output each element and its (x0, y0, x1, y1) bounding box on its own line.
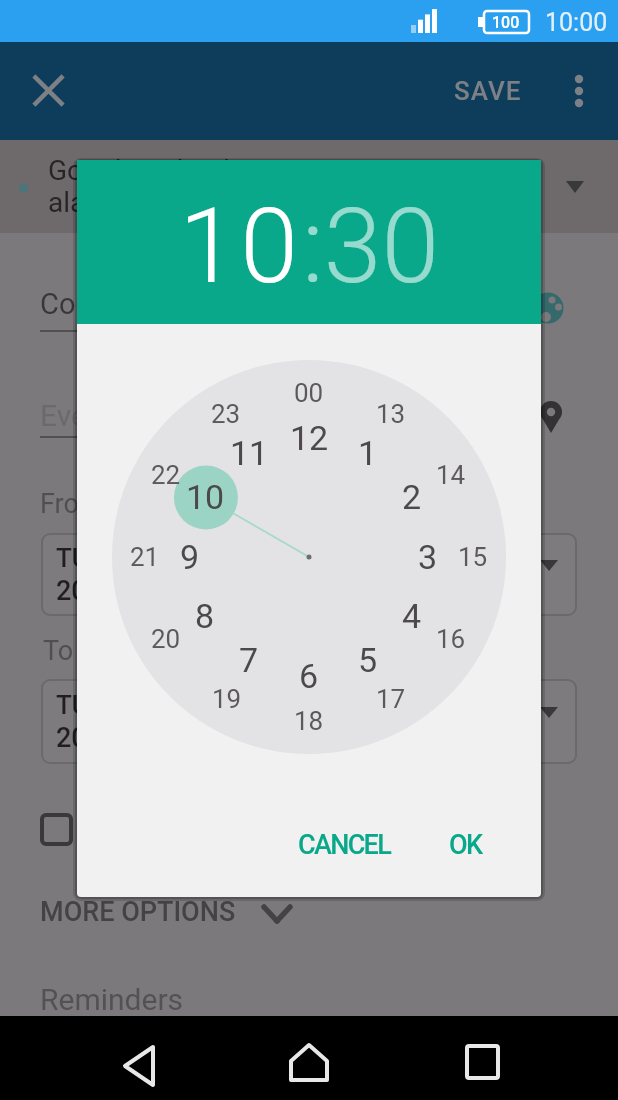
button[interactable] (279, 1036, 339, 1096)
staticText: 00 (294, 378, 324, 408)
button[interactable]: 00 (281, 371, 337, 415)
button[interactable] (557, 66, 601, 116)
button[interactable]: 5 (336, 635, 400, 685)
staticText: SAVE (454, 76, 522, 106)
button[interactable]: 12 (277, 413, 341, 463)
staticText: 23 (211, 399, 241, 429)
button[interactable]: 10 (179, 186, 302, 308)
staticText: 19 (212, 684, 242, 714)
button[interactable]: SAVE (408, 61, 568, 121)
staticText: OK (449, 829, 482, 861)
button[interactable]: 18 (281, 699, 337, 743)
button[interactable] (41, 679, 577, 764)
staticText: 2 (402, 477, 422, 517)
button[interactable]: CANCEL (269, 817, 419, 873)
staticText: From (40, 488, 103, 520)
staticText: 21 (130, 542, 160, 572)
staticText: 20 (151, 624, 181, 654)
staticText: 10:00 (545, 8, 608, 37)
staticText: 8 (195, 596, 215, 636)
button[interactable]: 15 (445, 535, 501, 579)
staticText: 12 (290, 418, 329, 458)
staticText: Reminders (40, 982, 184, 1017)
staticText: 3 (418, 537, 438, 577)
staticText: Event name (40, 398, 196, 433)
button[interactable]: OK (420, 817, 510, 873)
staticText: 17 (376, 684, 406, 714)
staticText: 15 (458, 542, 488, 572)
staticText: To (43, 635, 74, 667)
staticText: 16 (436, 624, 466, 654)
button[interactable]: 23 (198, 392, 254, 436)
button[interactable]: 9 (158, 532, 222, 582)
button[interactable] (452, 1036, 512, 1096)
button[interactable]: 4 (380, 591, 444, 641)
button[interactable]: 16 (423, 617, 479, 661)
button[interactable] (24, 66, 74, 116)
staticText: 22 (151, 460, 181, 490)
button[interactable]: 19 (199, 677, 255, 721)
button[interactable] (34, 807, 78, 851)
staticText: 11 (230, 433, 269, 473)
button[interactable]: 1 (336, 428, 400, 478)
button[interactable] (109, 1036, 169, 1096)
staticText: Connected calen (40, 287, 256, 321)
staticText: 10 (186, 477, 225, 517)
button[interactable]: 2 (380, 472, 444, 522)
staticText: 1 (358, 433, 378, 473)
staticText: CANCEL (298, 829, 391, 861)
staticText: 2015 (56, 722, 118, 754)
button[interactable]: 6 (277, 651, 341, 701)
staticText: Google Calenda (48, 154, 245, 187)
button[interactable]: 13 (363, 392, 419, 436)
staticText: 6 (299, 656, 319, 696)
button[interactable]: 21 (117, 535, 173, 579)
button[interactable]: 11 (217, 428, 281, 478)
button[interactable]: 8 (173, 591, 237, 641)
staticText: 9 (180, 537, 200, 577)
button[interactable] (41, 533, 577, 616)
staticText: 5 (358, 640, 378, 680)
staticText: MORE OPTIONS (40, 896, 236, 928)
button[interactable] (34, 890, 304, 934)
staticText: 7 (239, 640, 259, 680)
staticText: 18 (294, 706, 324, 736)
staticText: alarm (48, 186, 120, 219)
staticText: 14 (436, 460, 466, 490)
button[interactable]: 22 (138, 453, 194, 497)
button[interactable]: 7 (217, 635, 281, 685)
staticText: 4 (402, 596, 422, 636)
button[interactable]: 17 (363, 677, 419, 721)
staticText: 100 (492, 13, 520, 32)
staticText: 2015 (56, 575, 118, 607)
staticText: TUE, AUG 4, (56, 690, 195, 720)
button[interactable]: 10 (173, 472, 237, 522)
button[interactable]: 20 (138, 617, 194, 661)
button[interactable]: :30 (302, 186, 440, 308)
staticText: TUE, AUG 4, (56, 543, 195, 573)
staticText: 13 (376, 399, 406, 429)
button[interactable]: 3 (396, 532, 460, 582)
button[interactable]: 14 (423, 453, 479, 497)
